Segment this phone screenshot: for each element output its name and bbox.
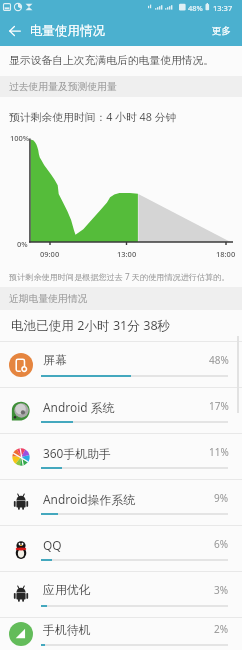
button[interactable]: 应用优化 [0, 571, 242, 617]
staticText: 显示设备自上次充满电后的电量使用情况。 [9, 54, 215, 68]
staticText: 18:00 [216, 249, 236, 259]
staticText: 近期电量使用情况 [9, 293, 88, 305]
staticText: 48% [209, 353, 229, 367]
staticText: 48% [188, 3, 203, 13]
staticText: 电池已使用 2小时 31分 38秒 [11, 317, 171, 334]
button[interactable]: Android操作系统 [0, 479, 242, 525]
staticText: 更多 [212, 25, 231, 37]
staticText: 3% [214, 583, 229, 597]
button[interactable]: 360手机助手 [0, 433, 242, 479]
staticText: 17% [209, 399, 229, 413]
staticText: 6% [214, 537, 229, 551]
staticText: 0% [17, 239, 28, 249]
staticText: 09:00 [40, 249, 60, 259]
button[interactable]: Android 系统 [0, 387, 242, 433]
staticText: 应用优化 [43, 583, 91, 598]
button[interactable]: 屏幕 [0, 341, 242, 387]
button[interactable]: QQ [0, 525, 242, 571]
staticText: 预计剩余使用时间：4 小时 48 分钟 [9, 109, 177, 124]
staticText: 11% [209, 445, 229, 459]
staticText: Android 系统 [43, 399, 115, 415]
staticText: 100% [10, 133, 30, 143]
staticText: Android操作系统 [43, 491, 136, 507]
staticText: 手机待机 [43, 623, 91, 638]
button[interactable]: Back [0, 16, 29, 45]
staticText: 电量使用情况 [30, 23, 105, 39]
staticText: QQ [43, 537, 62, 553]
staticText: 13:00 [117, 249, 137, 259]
staticText: 过去使用量及预测使用量 [9, 81, 117, 93]
staticText: 360手机助手 [43, 445, 111, 461]
staticText: 9% [214, 491, 229, 505]
button[interactable]: 手机待机 [0, 617, 242, 650]
staticText: 2% [214, 622, 229, 636]
button[interactable]: 更多 [201, 18, 242, 44]
staticText: 预计剩余使用时间是根据您过去 7 天的使用情况进行估算的。 [9, 271, 230, 282]
staticText: 屏幕 [43, 353, 67, 368]
staticText: 13:37 [213, 3, 233, 13]
